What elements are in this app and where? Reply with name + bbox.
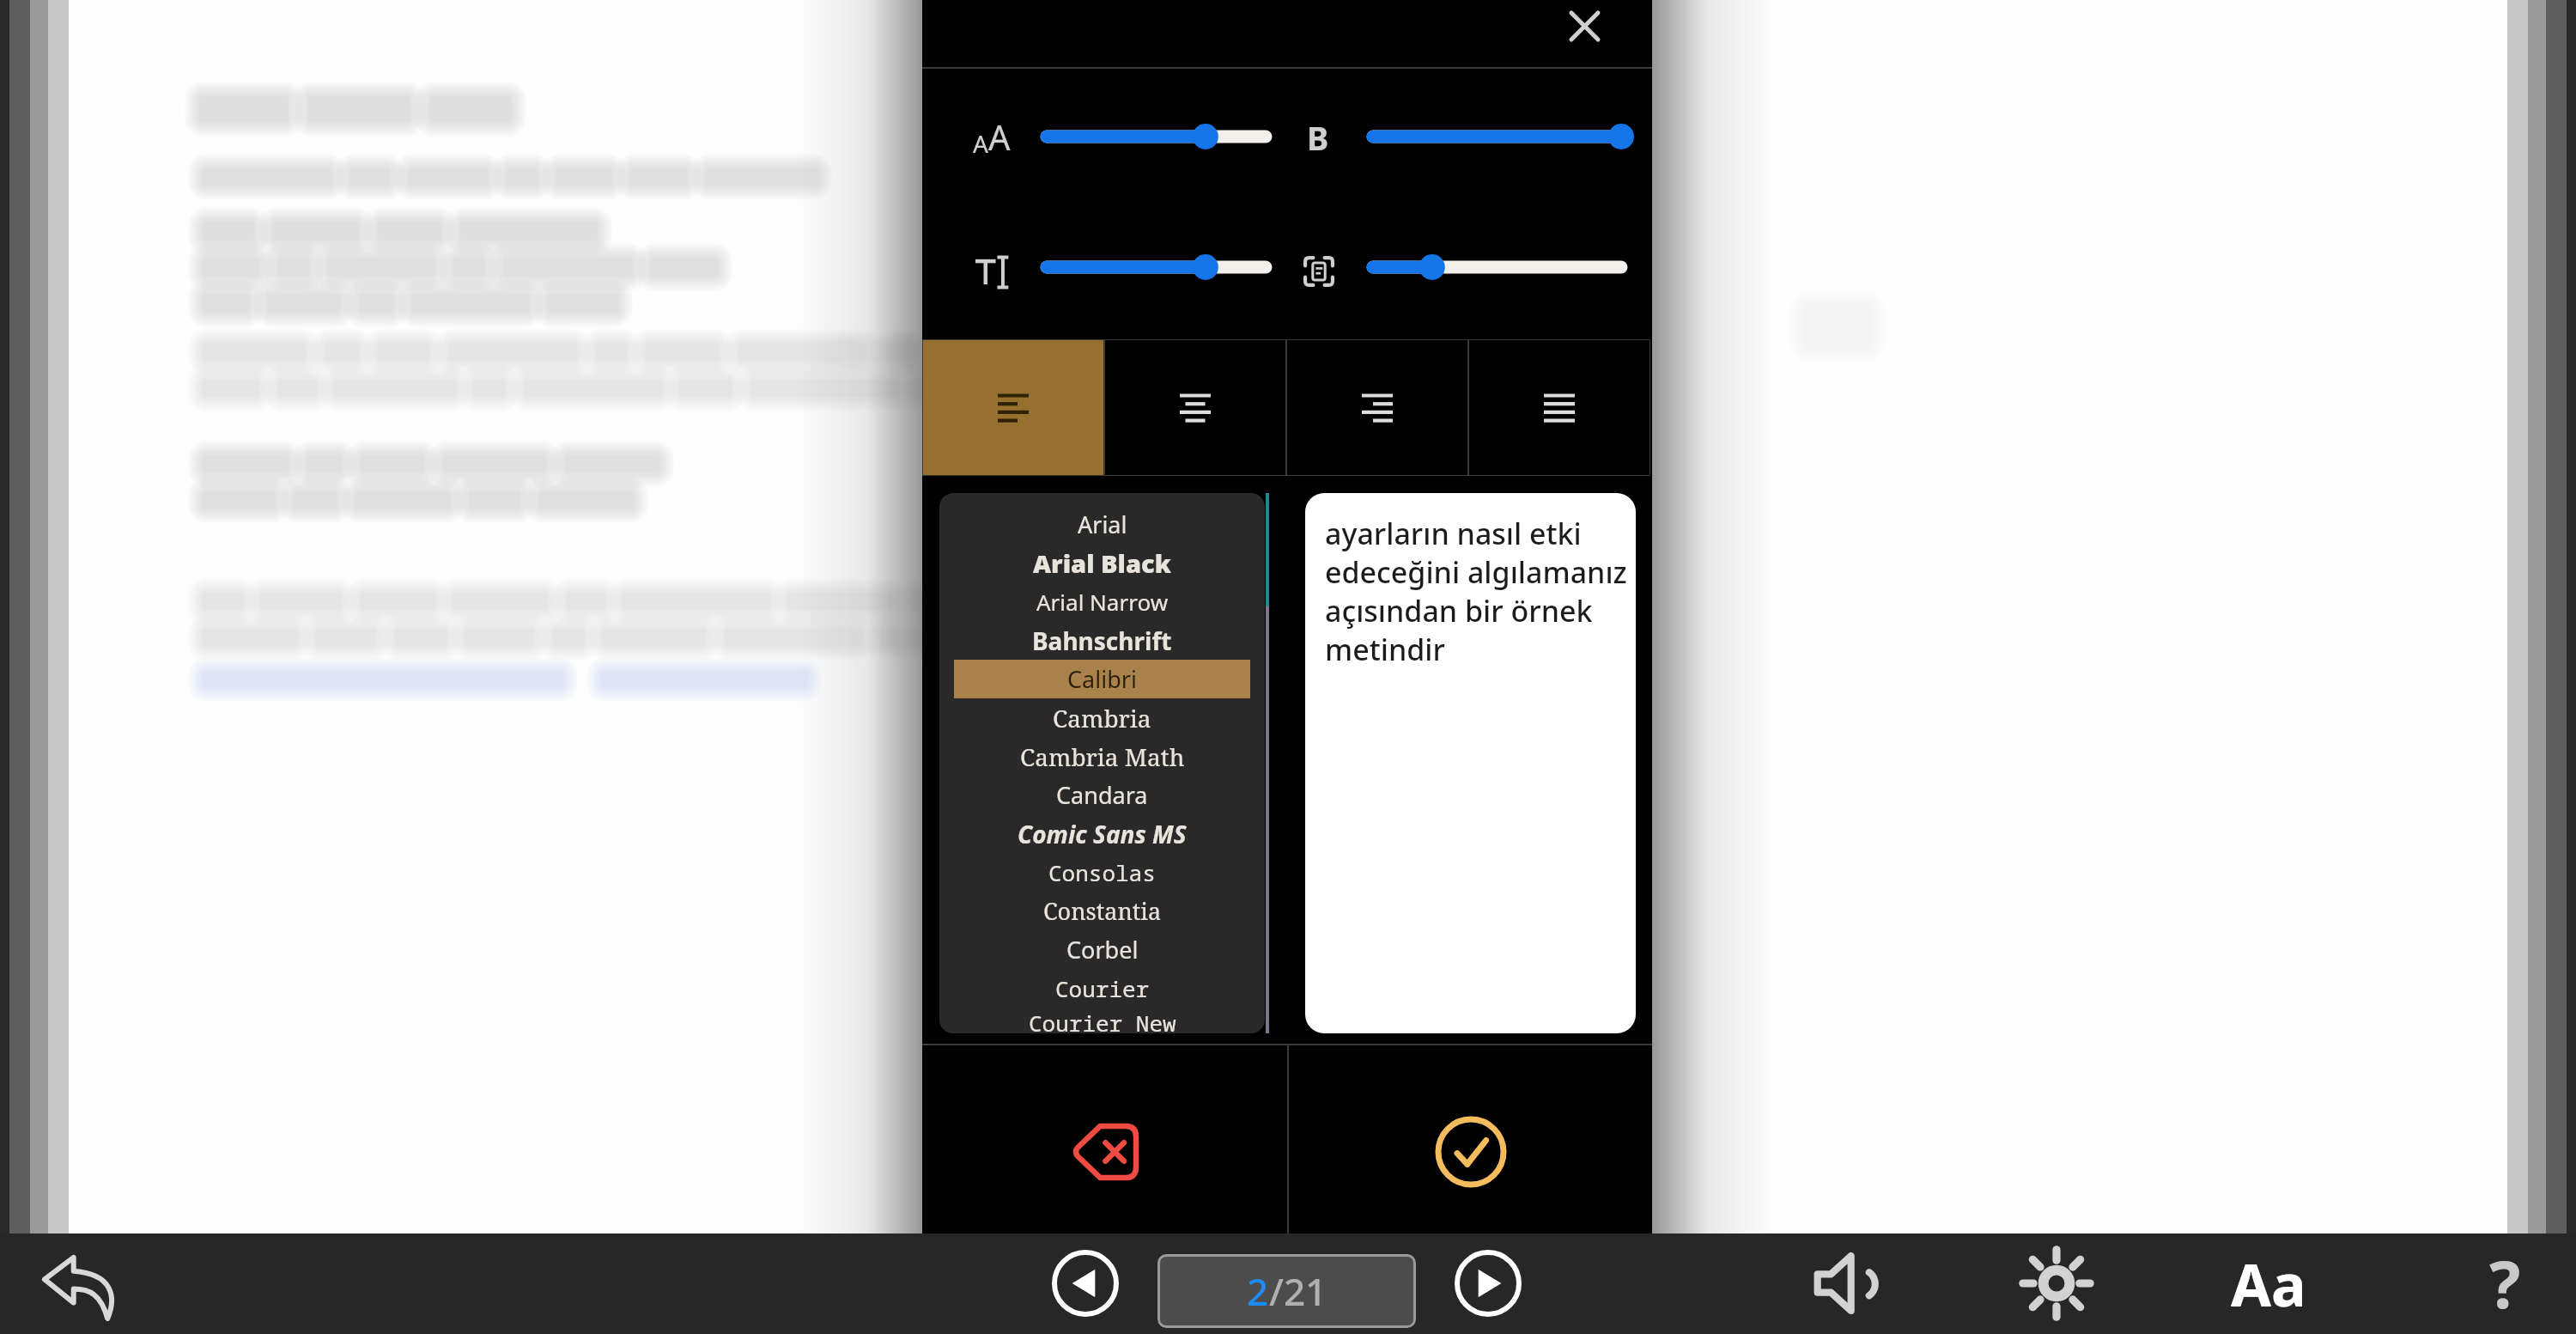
- staticText: /21: [1269, 1265, 1327, 1317]
- staticText: Courier: [1055, 973, 1150, 1003]
- button[interactable]: Corbel: [954, 930, 1250, 969]
- button[interactable]: Calibri: [954, 660, 1250, 698]
- button[interactable]: Font size: [1041, 118, 1272, 155]
- staticText: Arial: [1078, 509, 1127, 540]
- staticText: Arial Narrow: [1036, 587, 1169, 617]
- button[interactable]: 2: [1157, 1254, 1416, 1328]
- staticText: Candara: [1056, 779, 1148, 811]
- button[interactable]: Consolas: [954, 853, 1250, 892]
- button[interactable]: Line spacing: [1367, 248, 1627, 286]
- button[interactable]: Cancel: [922, 1045, 1287, 1233]
- button[interactable]: Next page: [1438, 1233, 1538, 1333]
- button[interactable]: Arial Black: [954, 544, 1250, 582]
- button[interactable]: Font weight: [1367, 118, 1627, 155]
- button[interactable]: Font settings: [2219, 1233, 2318, 1333]
- button[interactable]: ayarların nasıl etki edeceğini algılaman…: [1305, 493, 1636, 1033]
- staticText: A: [973, 127, 988, 160]
- staticText: Constantia: [1043, 895, 1162, 927]
- button[interactable]: Previous page: [1036, 1233, 1135, 1333]
- button[interactable]: Sound: [1797, 1233, 1897, 1333]
- button[interactable]: Courier: [954, 969, 1250, 1008]
- button[interactable]: Confirm: [1289, 1045, 1652, 1233]
- button[interactable]: Align right: [1286, 339, 1468, 476]
- staticText: Cambria Math: [1020, 740, 1185, 773]
- button[interactable]: Cambria: [954, 698, 1250, 737]
- staticText: Comic Sans MS: [1018, 818, 1187, 850]
- staticText: ayarların nasıl etki edeceğini algılaman…: [1325, 514, 1627, 669]
- staticText: Courier New: [1029, 1008, 1176, 1033]
- button[interactable]: Justify: [1468, 339, 1650, 476]
- button[interactable]: Align left: [922, 339, 1104, 476]
- staticText: 2: [1247, 1265, 1269, 1317]
- button[interactable]: Close: [1557, 0, 1612, 53]
- staticText: B: [1307, 115, 1329, 160]
- staticText: Cambria: [1053, 702, 1151, 734]
- button[interactable]: Bahnschrift: [954, 621, 1250, 660]
- button[interactable]: Candara: [954, 776, 1250, 814]
- button[interactable]: Brightness: [2007, 1233, 2106, 1333]
- button[interactable]: Align center: [1104, 339, 1286, 476]
- staticText: Bahnschrift: [1032, 624, 1172, 657]
- button[interactable]: Courier New: [954, 1008, 1250, 1033]
- button[interactable]: Back: [29, 1233, 129, 1333]
- button[interactable]: Letter spacing: [1041, 248, 1272, 286]
- staticText: Consolas: [1048, 857, 1156, 887]
- button[interactable]: Constantia: [954, 892, 1250, 930]
- staticText: Calibri: [1067, 663, 1137, 695]
- staticText: ?: [2489, 1239, 2521, 1328]
- button[interactable]: Arial Narrow: [954, 582, 1250, 621]
- staticText: A: [988, 113, 1011, 160]
- button[interactable]: Arial: [954, 505, 1250, 544]
- button[interactable]: Cambria Math: [954, 737, 1250, 776]
- staticText: Aa: [2231, 1244, 2306, 1324]
- staticText: Arial Black: [1033, 546, 1171, 580]
- button[interactable]: Comic Sans MS: [954, 814, 1250, 853]
- staticText: Corbel: [1066, 934, 1139, 965]
- button[interactable]: Help: [2455, 1233, 2555, 1333]
